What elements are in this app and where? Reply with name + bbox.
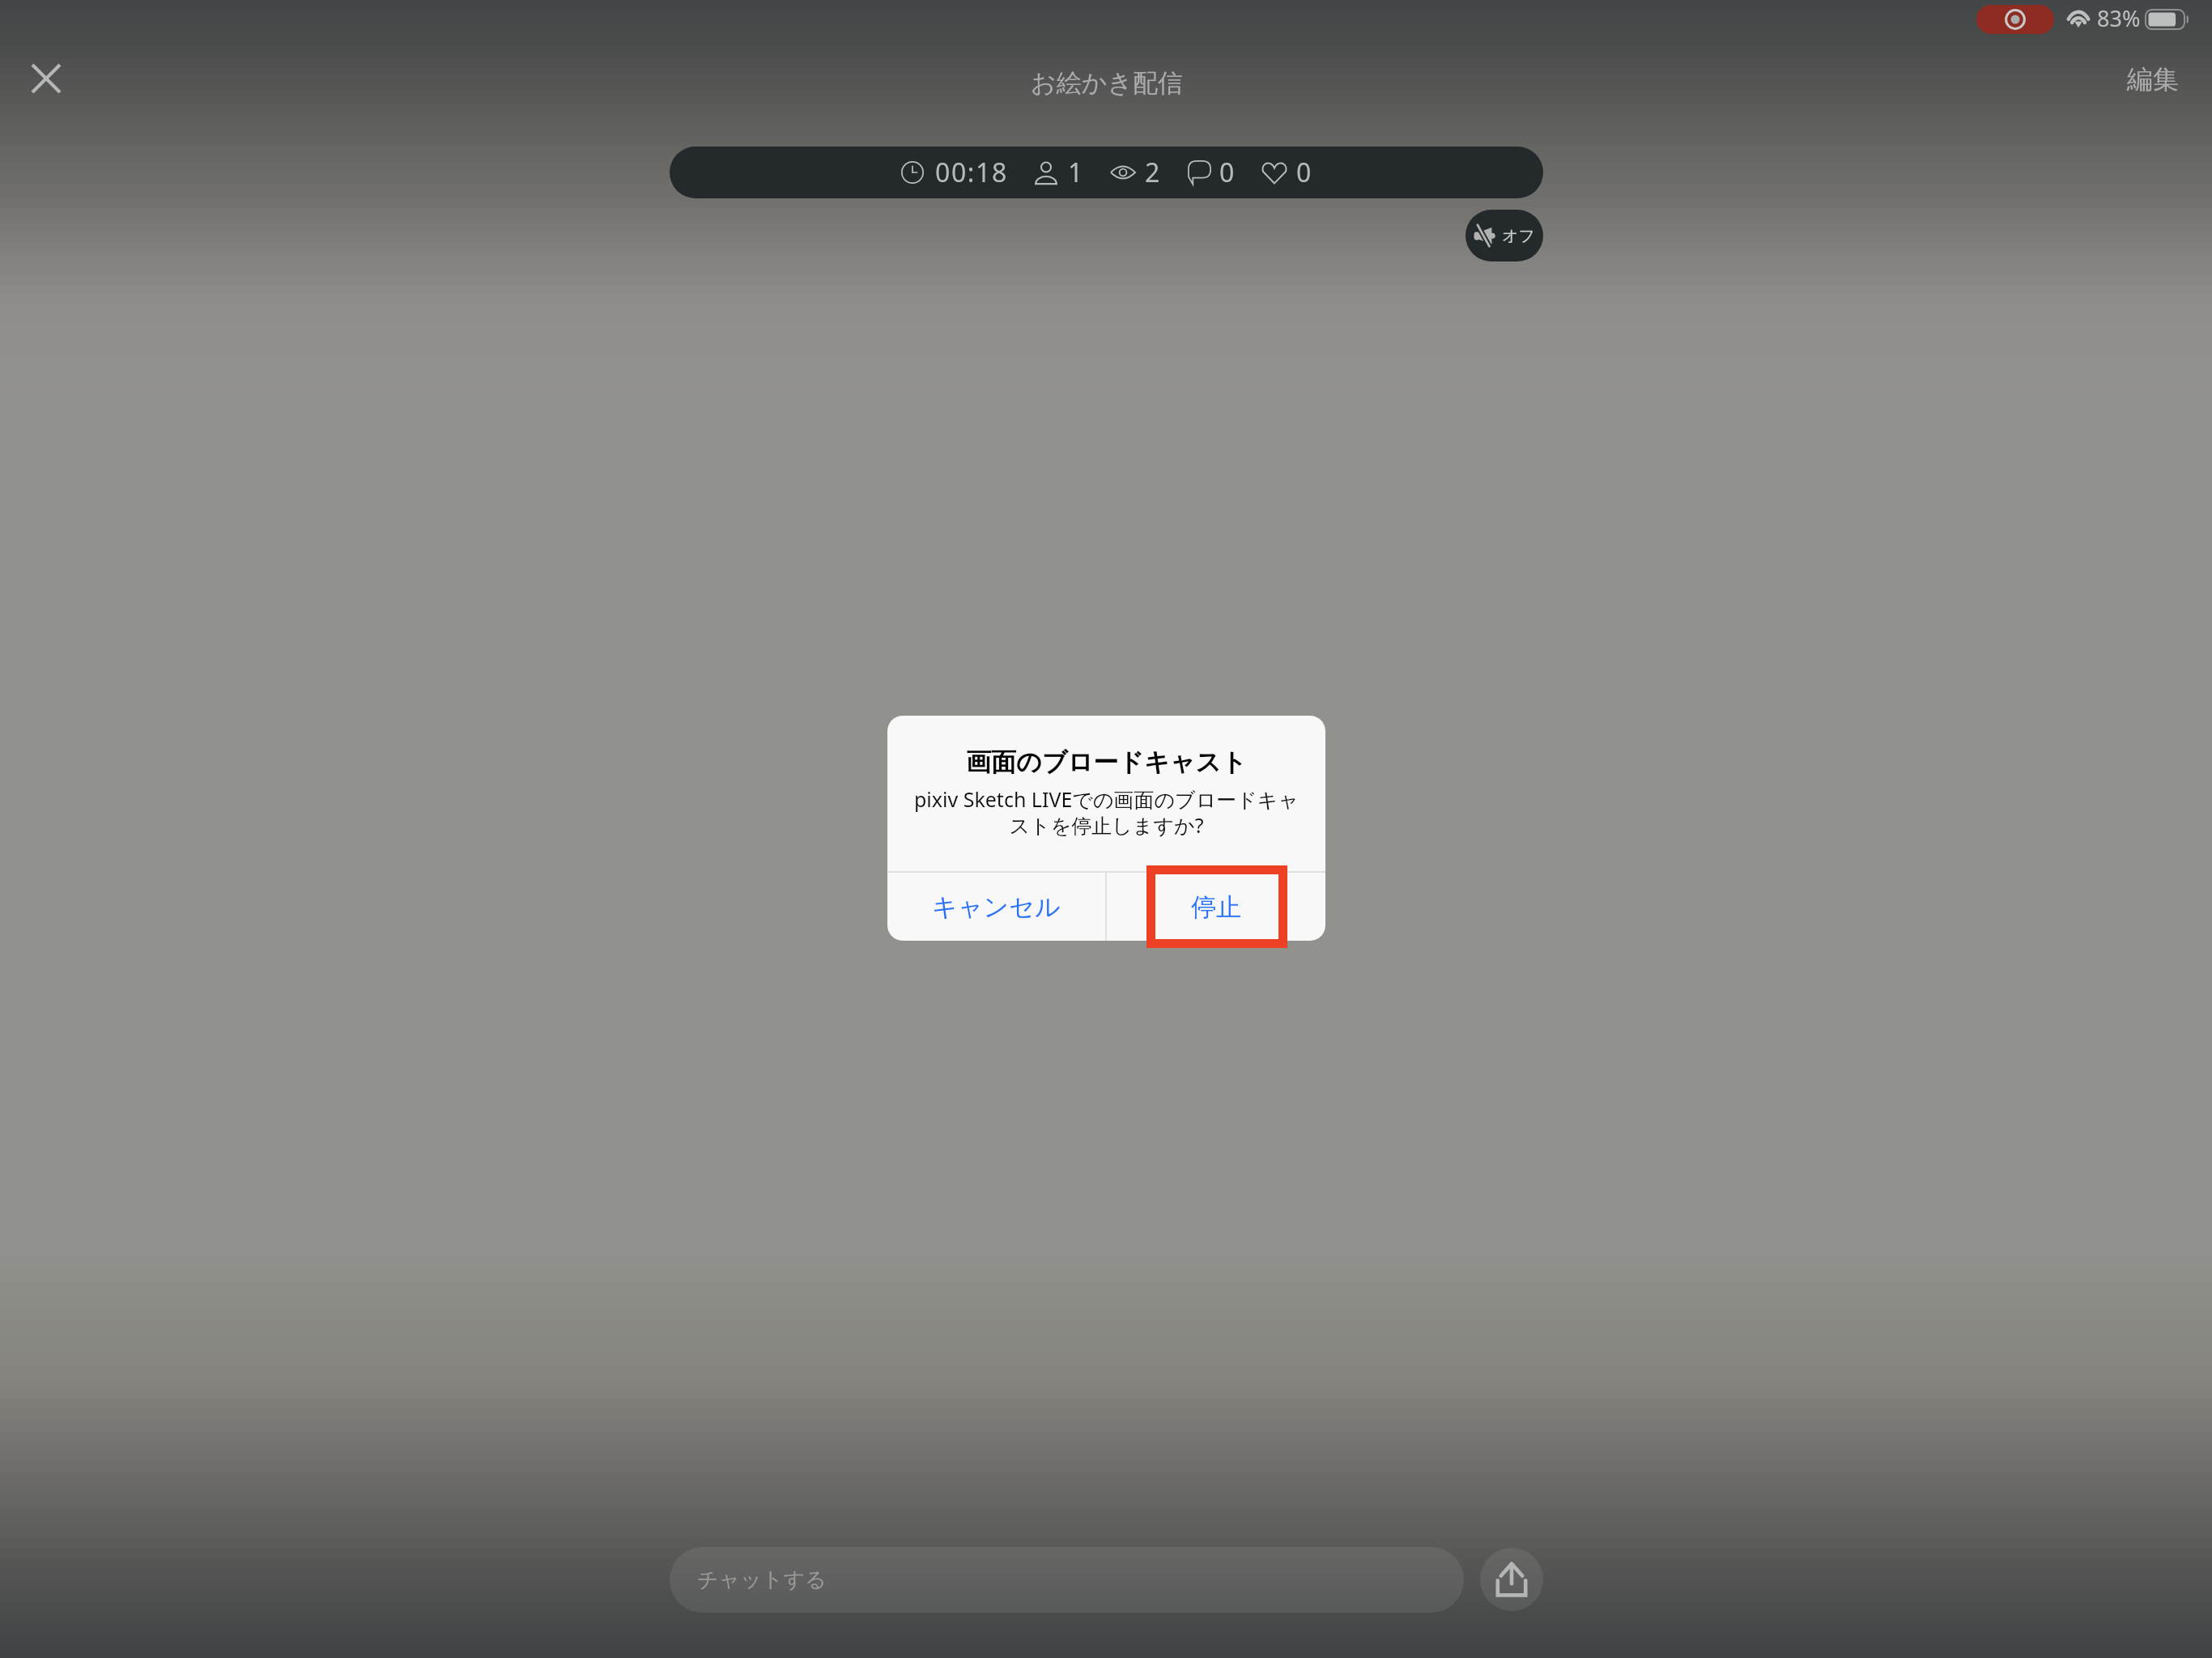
button[interactable]: Share [1480, 1548, 1543, 1611]
staticText: 画面のブロードキャスト [966, 746, 1247, 778]
button[interactable]: チャットする [670, 1547, 1464, 1613]
staticText: 2 [1145, 155, 1160, 190]
button[interactable]: 00:18 [670, 147, 1543, 198]
staticText: 0 [1219, 155, 1235, 190]
staticText: 83% [2097, 3, 2141, 33]
staticText: キャンセル [932, 891, 1061, 923]
button[interactable]: Close [12, 45, 80, 113]
button[interactable]: 編集 [2105, 50, 2201, 108]
staticText: チャットする [697, 1567, 827, 1593]
staticText: 1 [1068, 155, 1083, 190]
staticText: お絵かき配信 [1031, 67, 1184, 99]
button[interactable]: オフ [1465, 210, 1543, 261]
staticText: 0 [1296, 155, 1312, 190]
staticText: 00:18 [935, 155, 1008, 190]
button[interactable]: 停止 [1107, 873, 1325, 941]
button[interactable]: キャンセル [887, 873, 1105, 941]
staticText: オフ [1502, 226, 1535, 246]
staticText: pixiv Sketch LIVEでの画面のブロードキャストを停止しますか? [912, 785, 1300, 840]
staticText: 編集 [2127, 63, 2179, 96]
staticText: 停止 [1191, 891, 1241, 923]
